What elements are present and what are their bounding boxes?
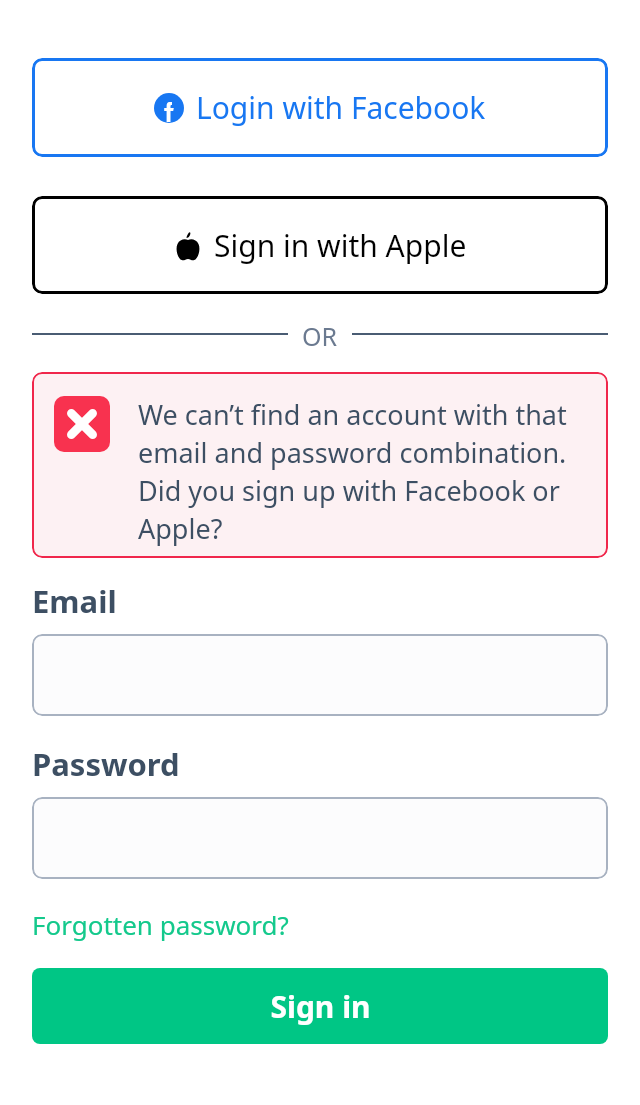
staticText: OR bbox=[302, 319, 338, 349]
button[interactable]: Email input field bbox=[32, 634, 608, 716]
staticText: Forgotten password? bbox=[32, 907, 289, 942]
button[interactable]: Sign in with Apple bbox=[32, 196, 608, 294]
button[interactable]: Login with Facebook bbox=[32, 58, 608, 157]
staticText: Email bbox=[32, 580, 117, 622]
staticText: Password bbox=[32, 743, 180, 785]
button[interactable]: Forgotten password? bbox=[32, 907, 289, 942]
staticText: Sign in with Apple bbox=[214, 225, 467, 266]
staticText: Login with Facebook bbox=[196, 87, 486, 128]
staticText: We can’t find an account with that email… bbox=[138, 396, 592, 547]
staticText: Sign in bbox=[270, 986, 371, 1027]
button[interactable]: Sign in bbox=[32, 968, 608, 1044]
button[interactable]: Password input field bbox=[32, 797, 608, 879]
